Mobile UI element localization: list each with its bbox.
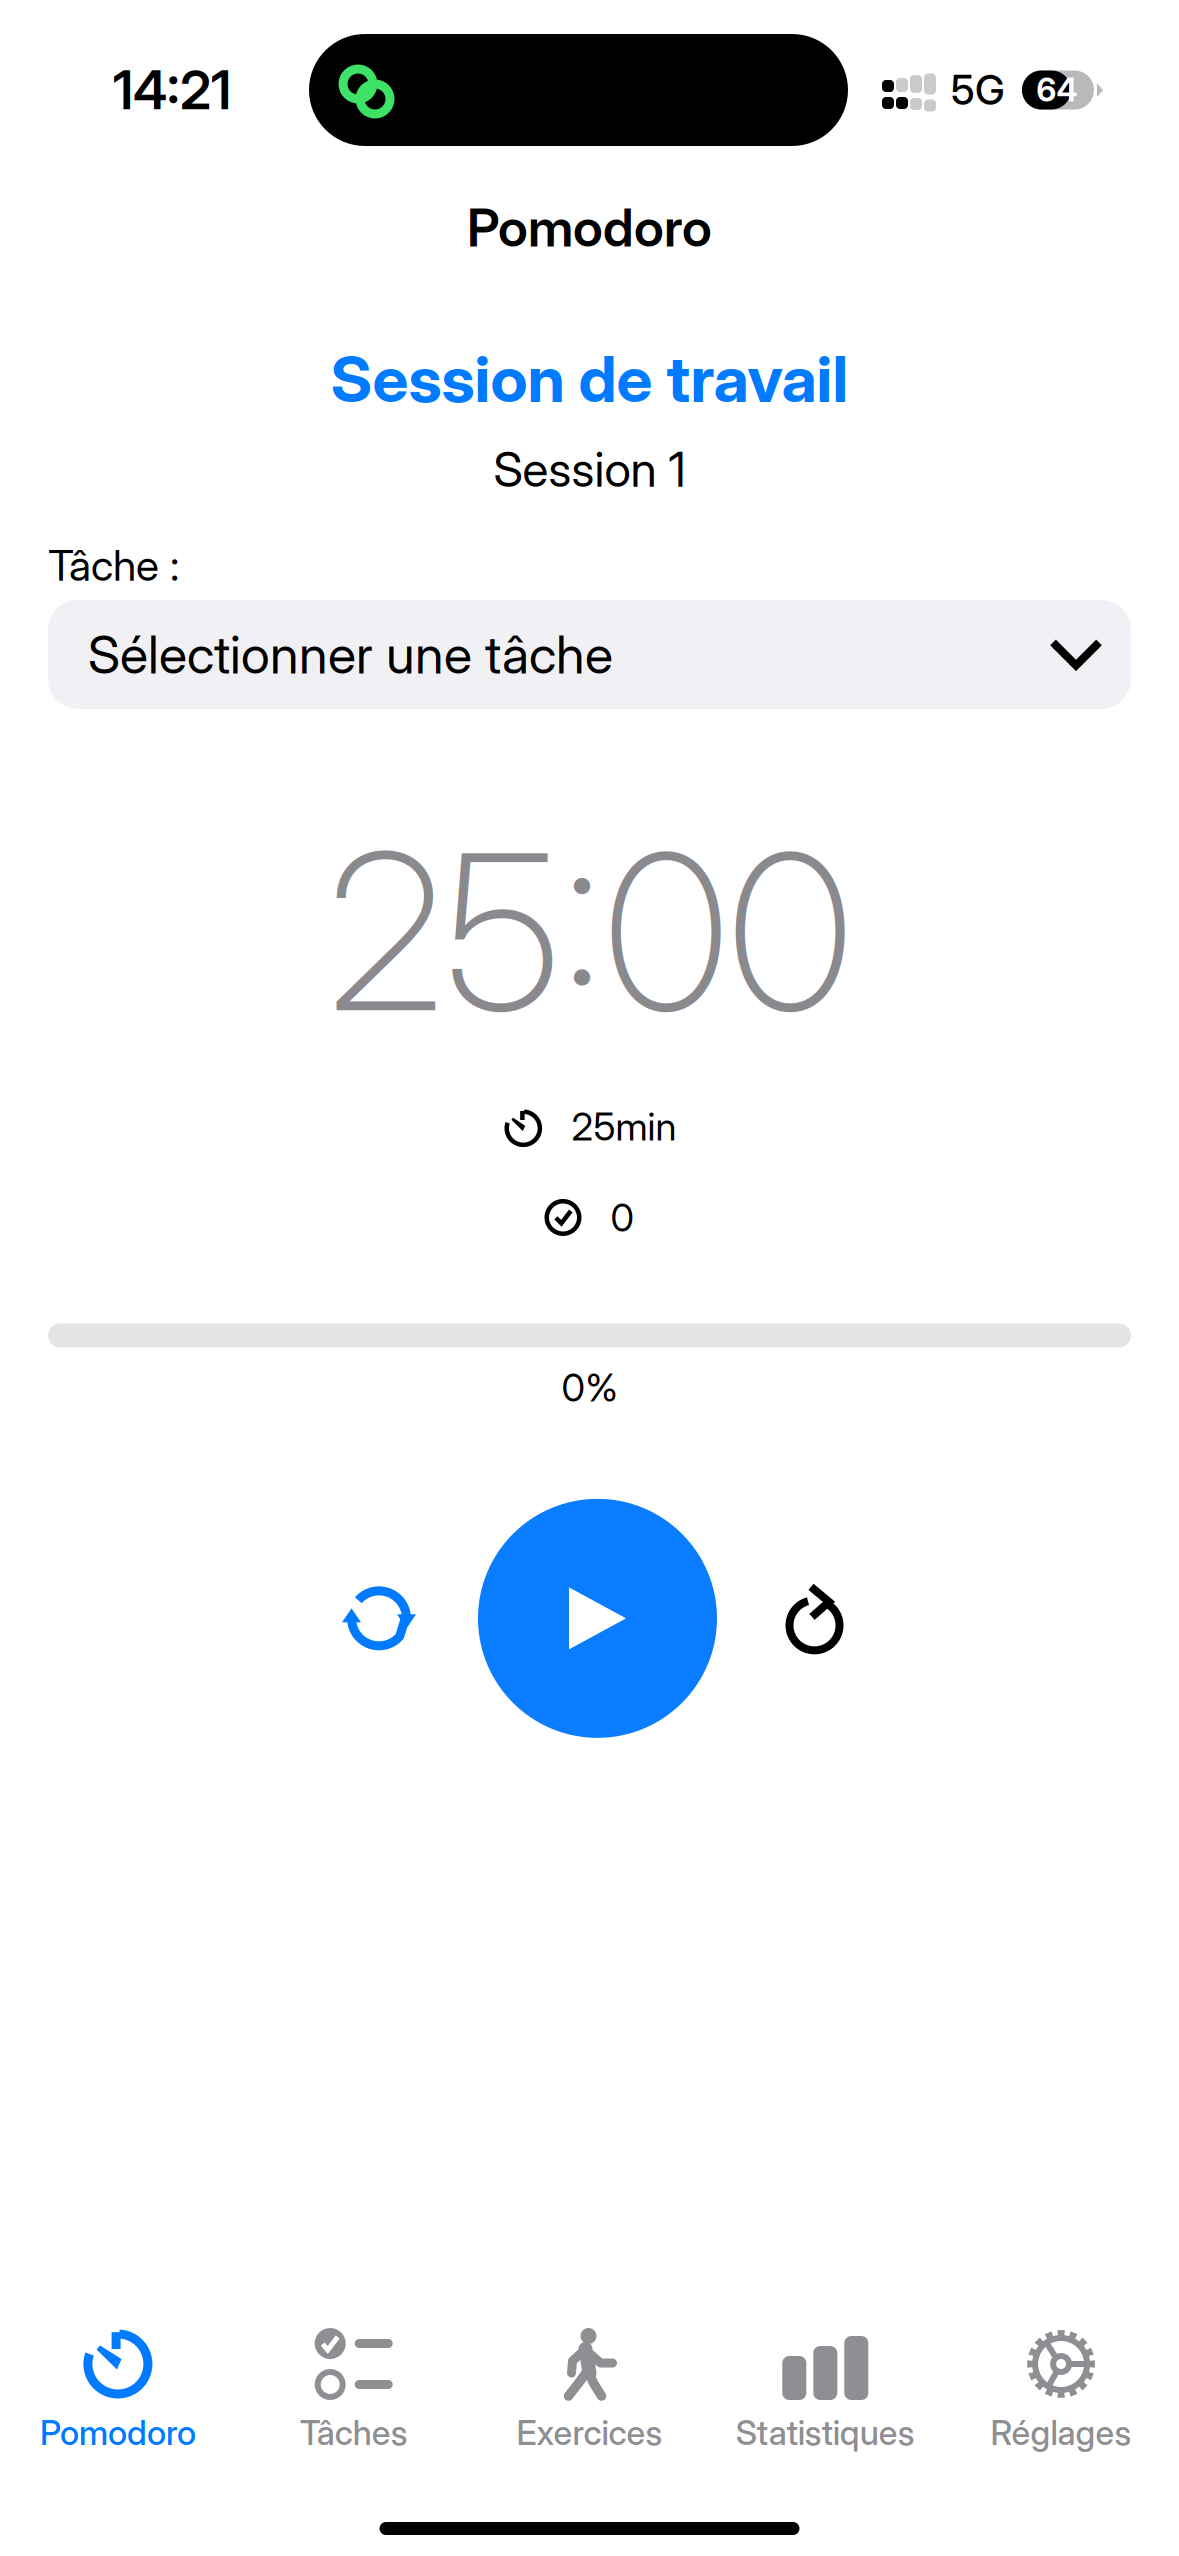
- button[interactable]: Réinitialiser: [781, 1583, 843, 1654]
- staticText: 25:00: [327, 801, 852, 1062]
- staticText: 5G: [951, 65, 1005, 114]
- staticText: Exercices: [516, 2412, 662, 2453]
- staticText: 64: [1036, 71, 1077, 109]
- staticText: Pomodoro: [40, 2412, 196, 2453]
- button[interactable]: Exercices: [472, 2294, 707, 2466]
- staticText: 25min: [571, 1103, 676, 1150]
- staticText: Tâches: [300, 2412, 408, 2453]
- staticText: 0%: [561, 1364, 617, 1411]
- staticText: Pomodoro: [467, 196, 712, 259]
- staticText: Sélectionner une tâche: [88, 623, 613, 686]
- button[interactable]: Démarrer: [478, 1499, 717, 1738]
- button[interactable]: Réglages: [943, 2294, 1179, 2466]
- button[interactable]: Tâches: [236, 2294, 472, 2466]
- button[interactable]: Statistiques: [707, 2294, 943, 2466]
- staticText: Session de travail: [330, 340, 848, 417]
- staticText: 0: [610, 1194, 634, 1241]
- staticText: Session 1: [493, 440, 685, 498]
- button[interactable]: Sélectionner une tâche: [48, 600, 1131, 709]
- staticText: Statistiques: [736, 2412, 915, 2453]
- staticText: 14:21: [113, 58, 231, 122]
- staticText: Tâche :: [48, 539, 179, 591]
- button[interactable]: Changer de mode: [336, 1585, 422, 1651]
- button[interactable]: Pomodoro: [0, 2294, 236, 2466]
- staticText: Réglages: [991, 2412, 1132, 2453]
